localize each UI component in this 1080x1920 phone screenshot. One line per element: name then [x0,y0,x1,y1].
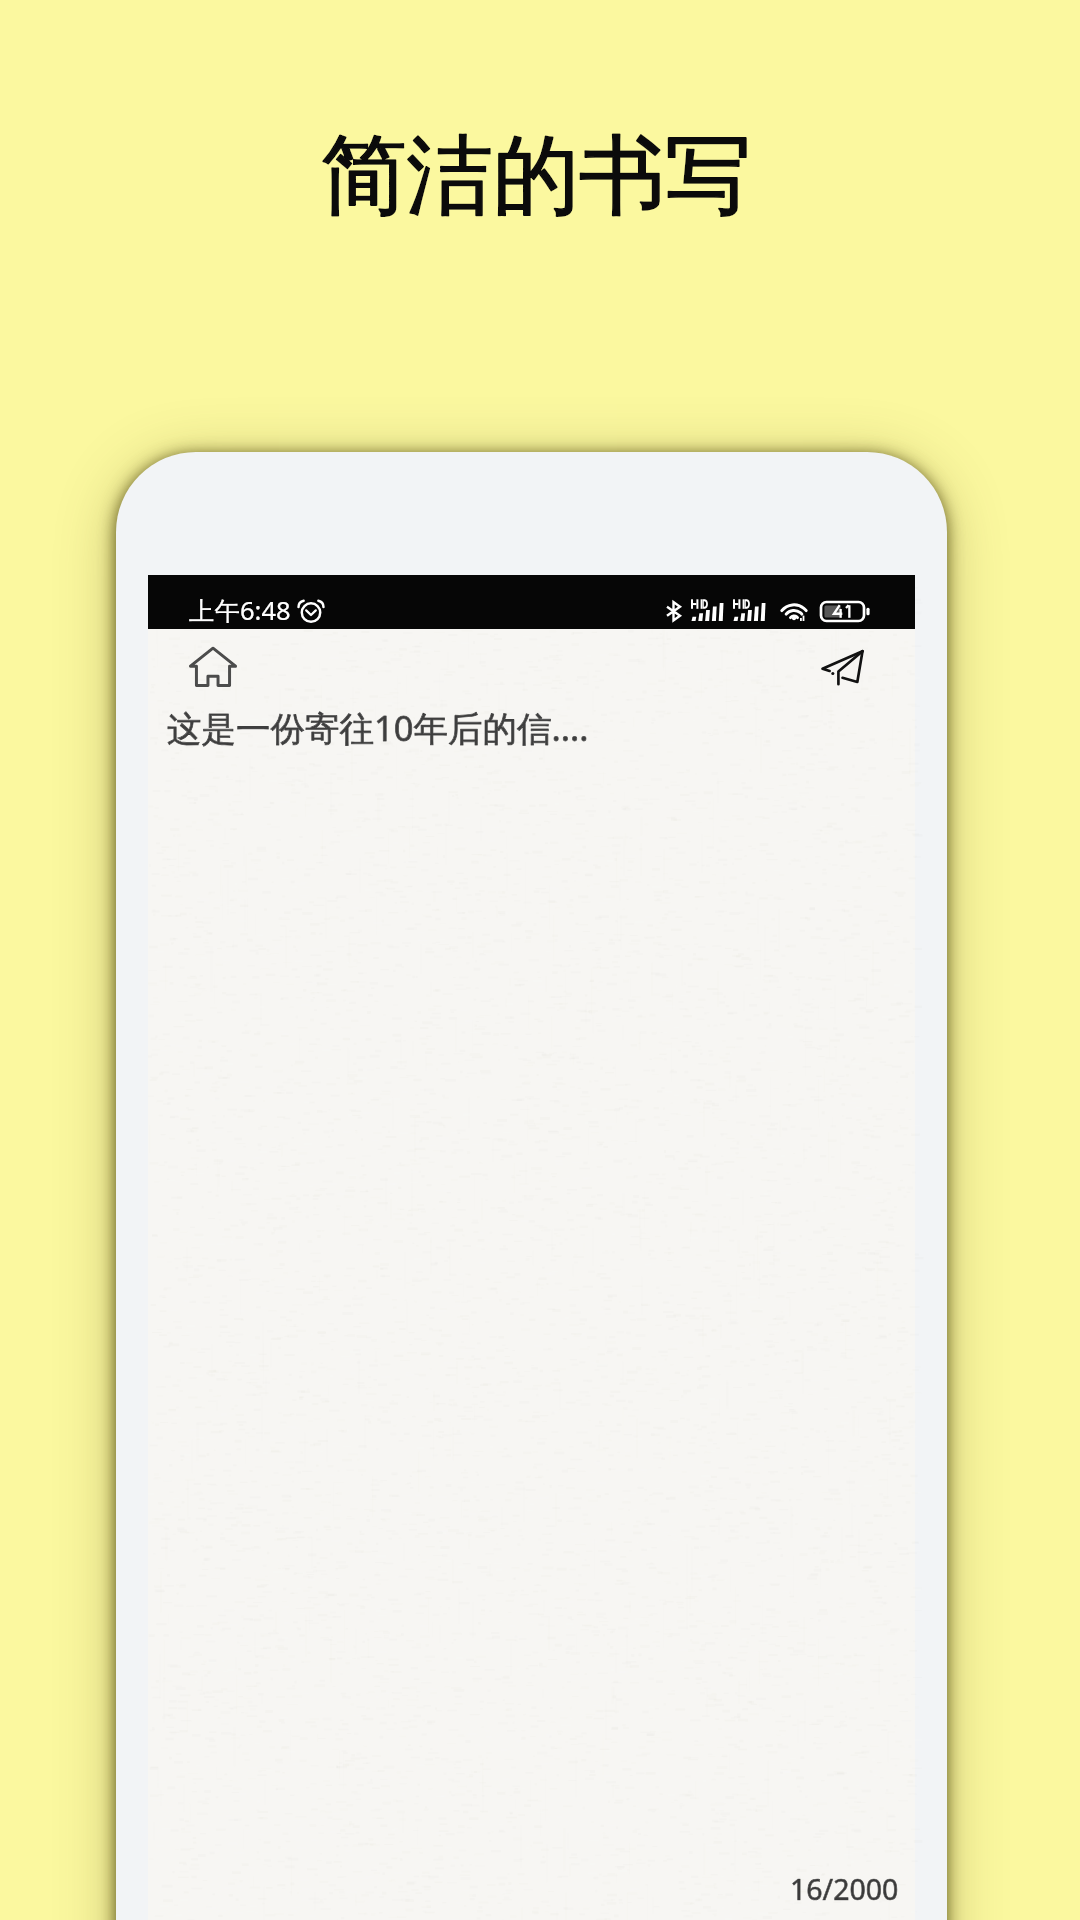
button[interactable]: Home [182,637,244,697]
staticText: 上午6:48 [189,593,291,628]
staticText: 这是一份寄往10年后的信.... [167,704,589,751]
staticText: 简洁的书写 [0,122,1076,230]
button[interactable]: Send [811,637,873,697]
staticText: 16/2000 [790,1870,899,1909]
staticText: 简洁的书写 [0,122,1076,230]
staticText: 16/2000 [790,1870,899,1909]
staticText: 这是一份寄往10年后的信.... [167,704,589,751]
